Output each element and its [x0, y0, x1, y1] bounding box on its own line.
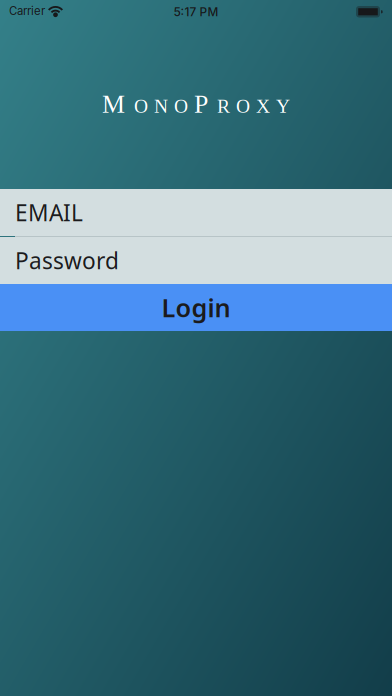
button[interactable]: Password: [0, 237, 392, 284]
staticText: Password: [15, 245, 119, 275]
staticText: 5:17 PM: [173, 5, 218, 19]
staticText: Carrier: [9, 4, 45, 18]
staticText: EMAIL: [15, 197, 83, 227]
button[interactable]: Login: [0, 284, 392, 331]
staticText: Login: [161, 291, 230, 324]
staticText: M⁠ ⁠O⁠ ⁠N⁠ ⁠O⁠ ⁠P⁠ ⁠R⁠ ⁠O⁠ ⁠X⁠ ⁠Y: [102, 90, 290, 118]
button[interactable]: EMAIL: [0, 189, 392, 236]
